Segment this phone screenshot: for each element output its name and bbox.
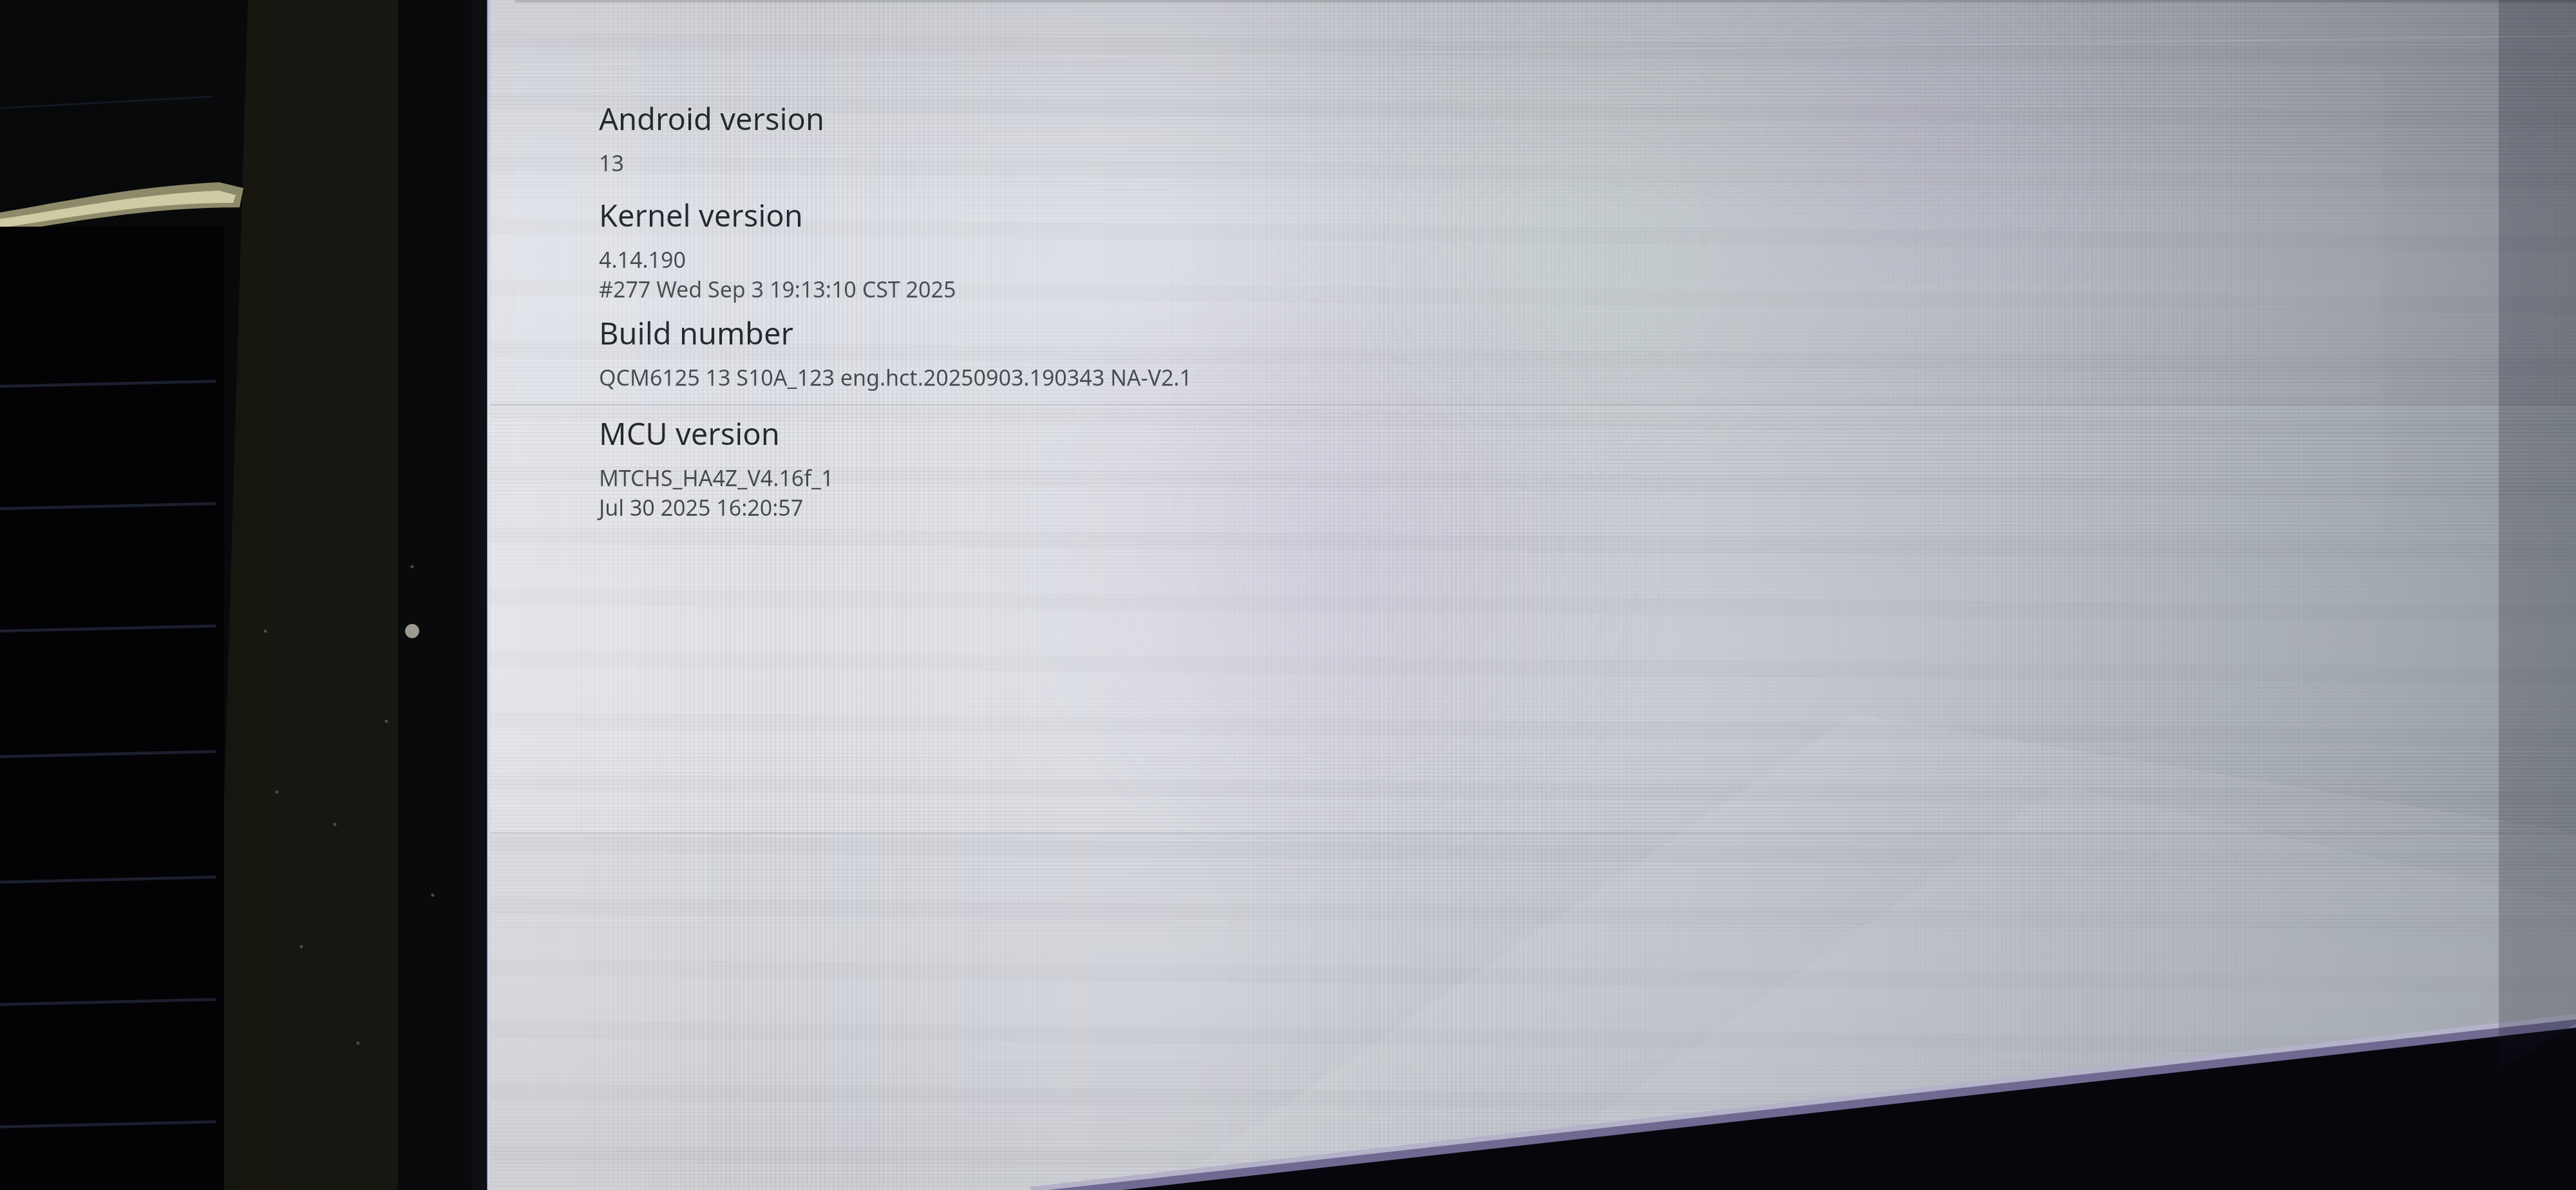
staticText: #277 Wed Sep 3 19:13:10 CST 2025	[599, 274, 956, 304]
staticText: Android version	[599, 98, 825, 139]
button[interactable]: Kernel version	[515, 165, 2383, 313]
button[interactable]: Android version	[515, 68, 2383, 181]
staticText: Jul 30 2025 16:20:57	[599, 493, 804, 522]
staticText: QCM6125 13 S10A_123 eng.hct.20250903.190…	[599, 363, 1192, 392]
button[interactable]: MCU version	[515, 383, 2383, 531]
staticText: Kernel version	[599, 194, 803, 236]
staticText: Build number	[599, 312, 793, 354]
staticText: MTCHS_HA4Z_V4.16f_1	[599, 463, 834, 493]
staticText: 4.14.190	[599, 245, 686, 274]
staticText: 13	[599, 148, 624, 178]
button[interactable]: Build number	[515, 283, 2383, 395]
staticText: MCU version	[599, 413, 780, 454]
